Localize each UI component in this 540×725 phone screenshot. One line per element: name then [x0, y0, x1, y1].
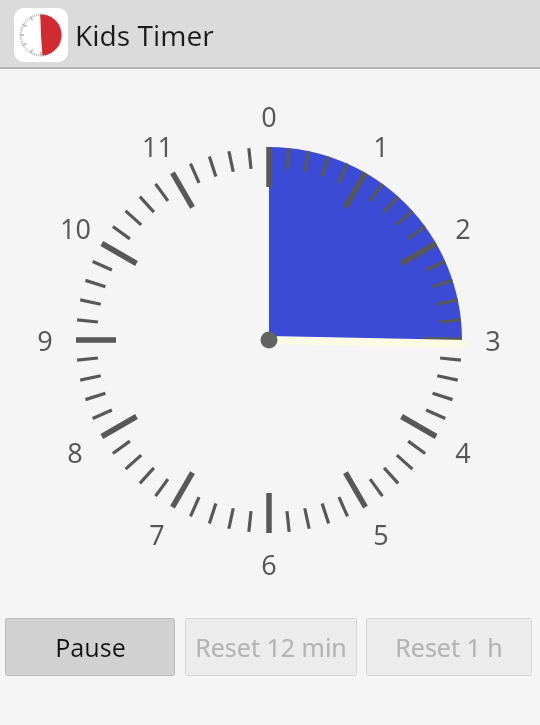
- staticText: 7: [149, 516, 165, 553]
- button[interactable]: Pause: [5, 618, 175, 676]
- button[interactable]: Reset 1 h: [366, 618, 532, 676]
- staticText: Kids Timer: [75, 16, 214, 54]
- button[interactable]: Reset 12 min: [185, 618, 357, 676]
- button[interactable]: Kids Timer app icon: [14, 8, 68, 62]
- staticText: 6: [261, 546, 277, 583]
- staticText: 9: [37, 322, 53, 359]
- staticText: 0: [261, 98, 277, 135]
- staticText: 1: [373, 128, 389, 165]
- staticText: Reset 1 h: [395, 630, 503, 664]
- staticText: 11: [142, 128, 173, 165]
- staticText: Pause: [55, 630, 126, 664]
- staticText: 5: [373, 516, 389, 553]
- staticText: Reset 12 min: [195, 630, 347, 664]
- staticText: 10: [60, 210, 91, 247]
- staticText: 3: [485, 322, 501, 359]
- staticText: 4: [455, 434, 471, 471]
- staticText: 2: [455, 210, 471, 247]
- staticText: 8: [67, 434, 83, 471]
